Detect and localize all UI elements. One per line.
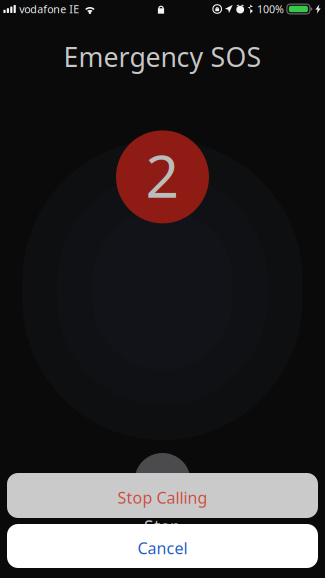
button[interactable]: Cancel (7, 524, 318, 568)
staticText: Cancel (137, 537, 187, 559)
button[interactable]: Stop (134, 453, 190, 509)
button[interactable]: Stop Calling (7, 473, 318, 518)
staticText: Stop (144, 515, 181, 538)
staticText: Emergency SOS (63, 39, 261, 74)
staticText: Stop Calling (117, 487, 207, 508)
staticText: vodafone IE (19, 2, 79, 16)
staticText: 100% (257, 2, 284, 16)
staticText: 2 (145, 136, 179, 214)
